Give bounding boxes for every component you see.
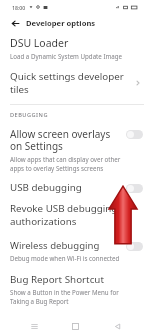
staticText: Wireless debugging [10,239,100,252]
staticText: Allow apps that can display over other a… [10,155,121,173]
button[interactable]: Quick settings developer tiles [0,68,150,98]
button[interactable]: Bug Report Shortcut [0,272,150,307]
staticText: USB debugging [10,181,82,194]
button[interactable]: Recent apps [26,318,42,334]
staticText: Quick settings developer tiles [10,70,134,96]
button[interactable]: Toggle Allow screen overlays on Settings [126,130,143,139]
button[interactable]: Back [109,318,125,334]
button[interactable]: Home [67,318,83,334]
staticText: Load a Dynamic System Update Image [10,52,123,60]
staticText: Revoke USB debugging authorizations [10,202,138,228]
button[interactable]: Revoke USB debugging authorizations [0,201,150,229]
staticText: Debug mode when Wi-Fi is connected [10,254,120,262]
staticText: Developer options [26,18,96,28]
staticText: Bug Report Shortcut [10,273,104,286]
staticText: DEBUGGING [10,111,49,119]
button[interactable]: Back [8,16,22,30]
button[interactable]: Wireless debugging [0,238,150,263]
staticText: Allow screen overlays on Settings [10,127,121,153]
staticText: 18:00 [12,4,26,11]
staticText: DSU Loader [10,36,69,50]
button[interactable]: Toggle USB debugging [126,184,143,193]
button[interactable]: USB debugging [0,180,150,195]
button[interactable]: Toggle Wireless debugging [126,242,143,251]
staticText: Show a Button in the Power Menu for Taki… [10,288,138,306]
button[interactable]: DSU Loader [0,35,150,61]
button[interactable]: Allow screen overlays on Settings [0,126,150,174]
